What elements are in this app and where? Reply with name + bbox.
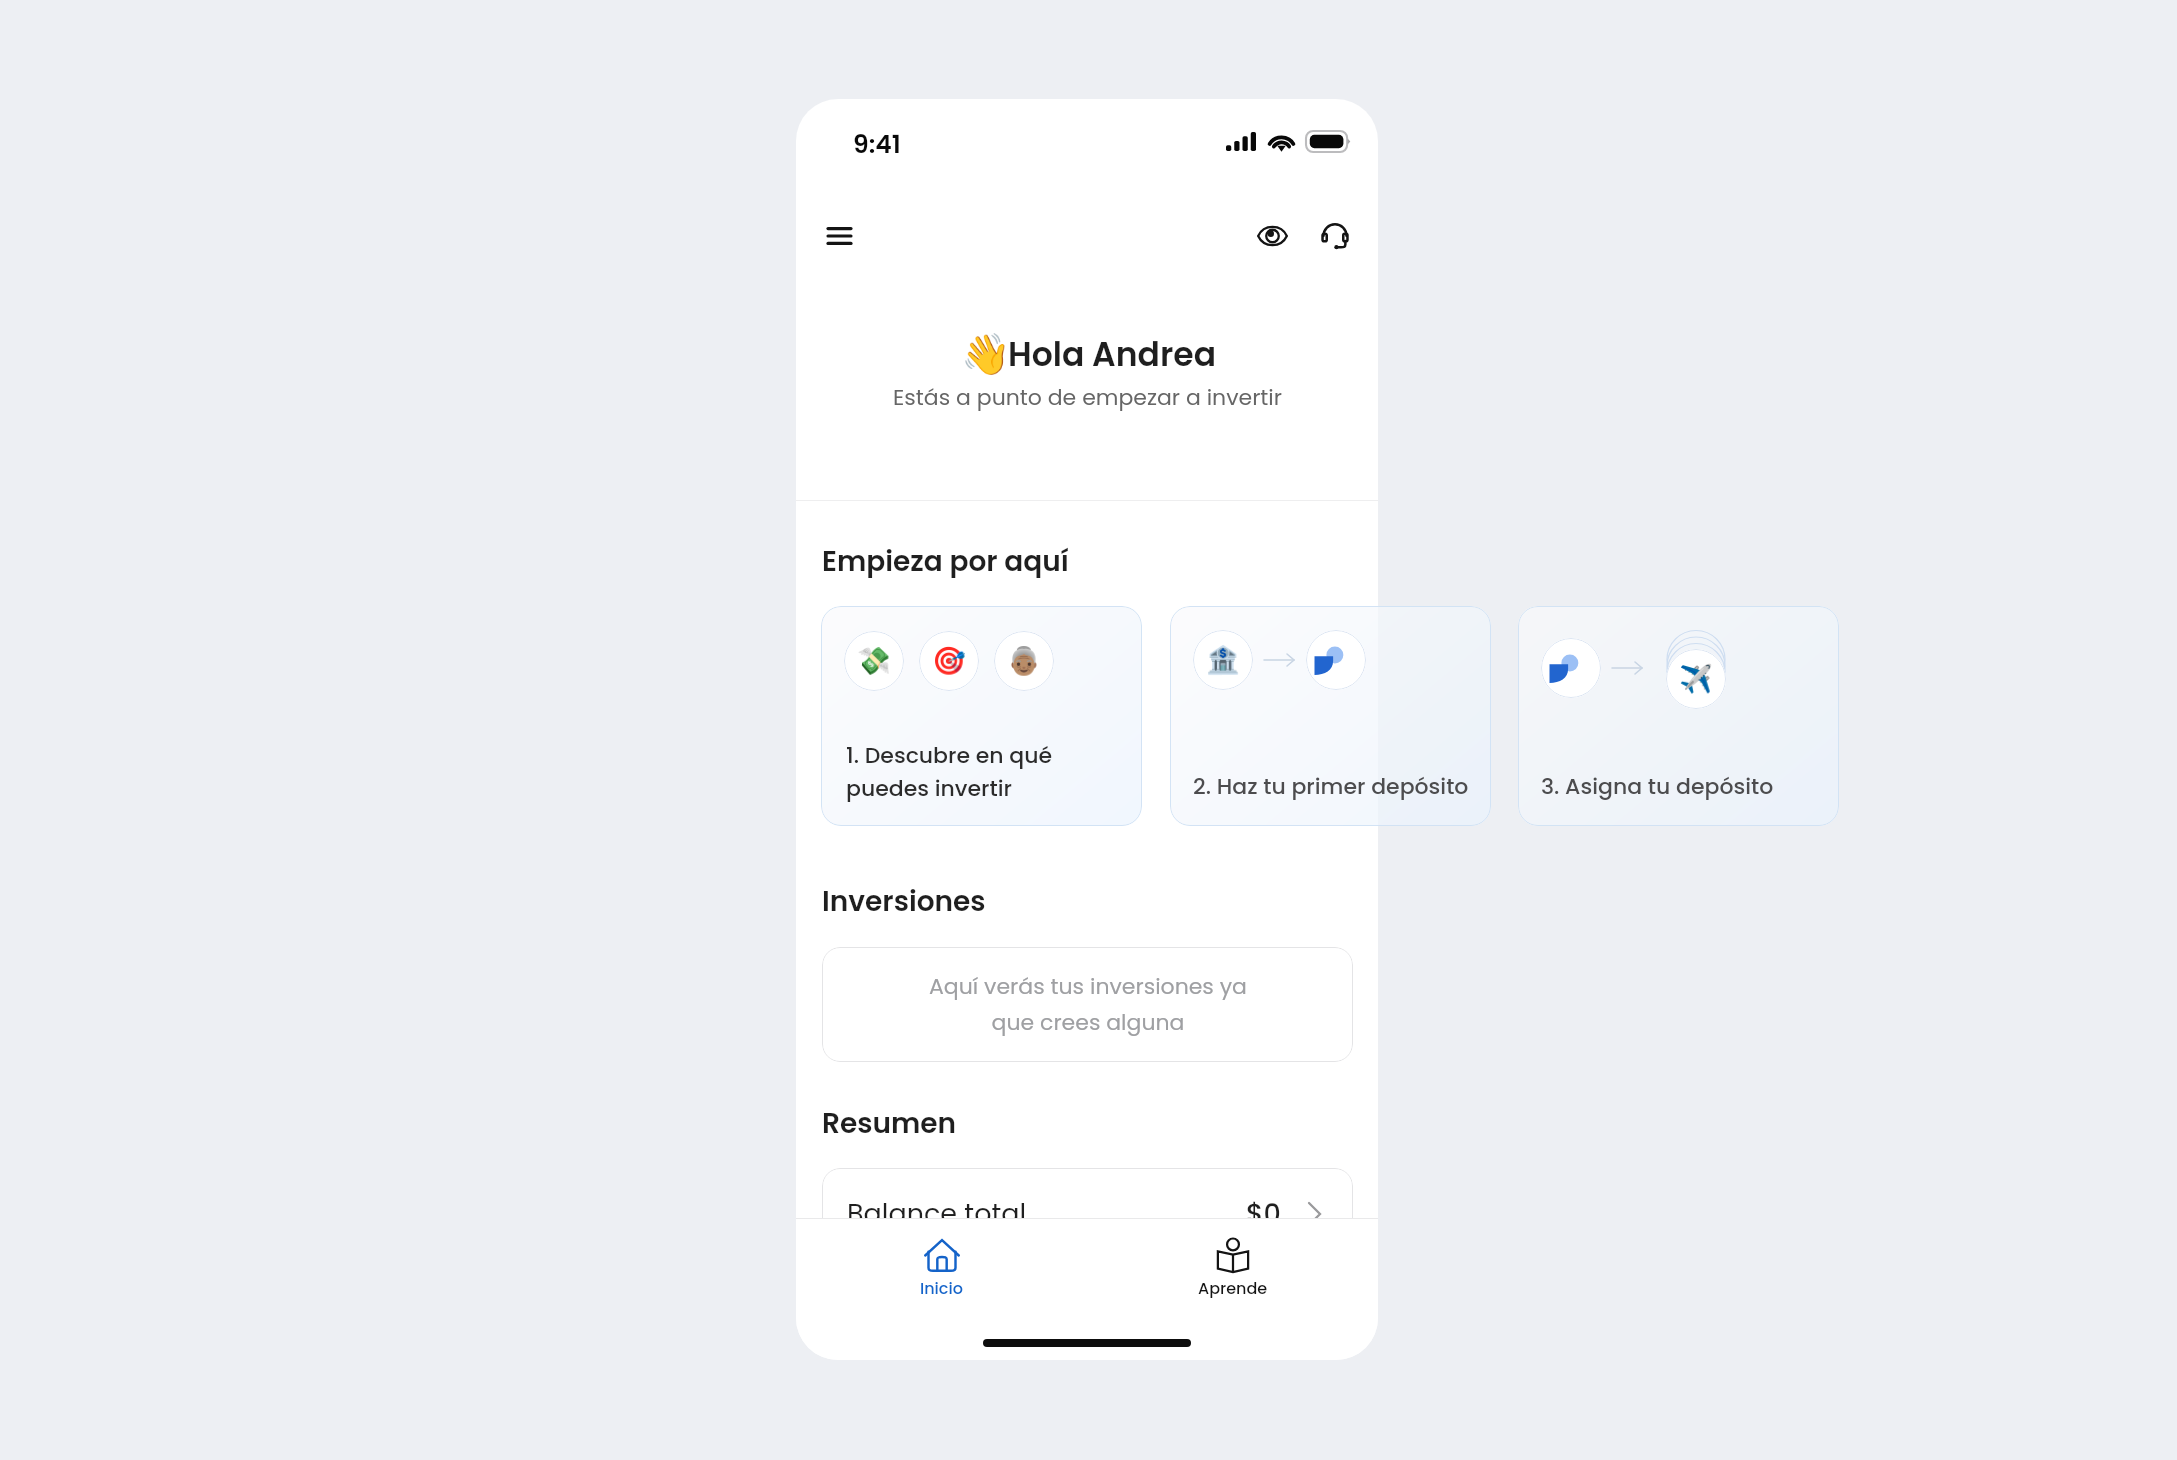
staticText: 👵🏽 xyxy=(1007,645,1041,677)
button[interactable]: Toggle balance visibility xyxy=(1249,213,1295,259)
staticText: Inicio xyxy=(920,1277,963,1299)
button[interactable]: Aquí verás tus inversiones ya que crees … xyxy=(822,947,1353,1062)
staticText: 9:41 xyxy=(853,127,901,162)
staticText: 2. Haz tu primer depósito xyxy=(1193,771,1469,802)
staticText: Hola Andrea xyxy=(1008,331,1216,377)
staticText: ✈️ xyxy=(1679,663,1713,695)
staticText: Balance total xyxy=(847,1195,1027,1233)
button[interactable]: 💸 xyxy=(821,606,1142,826)
staticText: Aquí verás tus inversiones ya que crees … xyxy=(929,971,1247,1038)
button[interactable]: Open menu xyxy=(816,213,862,259)
staticText: $0 xyxy=(1246,1195,1281,1233)
staticText: 1. Descubre en qué puedes invertir xyxy=(846,740,1053,804)
staticText: Resumen xyxy=(822,1104,957,1143)
staticText: 💸 xyxy=(857,645,891,677)
button[interactable]: ✈️ xyxy=(1518,606,1839,826)
button[interactable]: Aprende xyxy=(1087,1235,1378,1340)
staticText: Empieza por aquí xyxy=(822,542,1069,581)
button[interactable]: Contact support xyxy=(1312,213,1358,259)
staticText: Aprende xyxy=(1198,1277,1268,1299)
staticText: 👋 xyxy=(961,331,1011,378)
staticText: Estás a punto de empezar a invertir xyxy=(893,382,1282,413)
button[interactable]: Balance total xyxy=(822,1168,1353,1298)
button[interactable]: Inicio xyxy=(796,1235,1087,1340)
button[interactable]: 🏦 xyxy=(1170,606,1491,826)
staticText: 3. Asigna tu depósito xyxy=(1541,771,1774,802)
staticText: 🎯 xyxy=(932,645,966,677)
staticText: 🏦 xyxy=(1206,644,1240,676)
staticText: Inversiones xyxy=(822,882,986,921)
